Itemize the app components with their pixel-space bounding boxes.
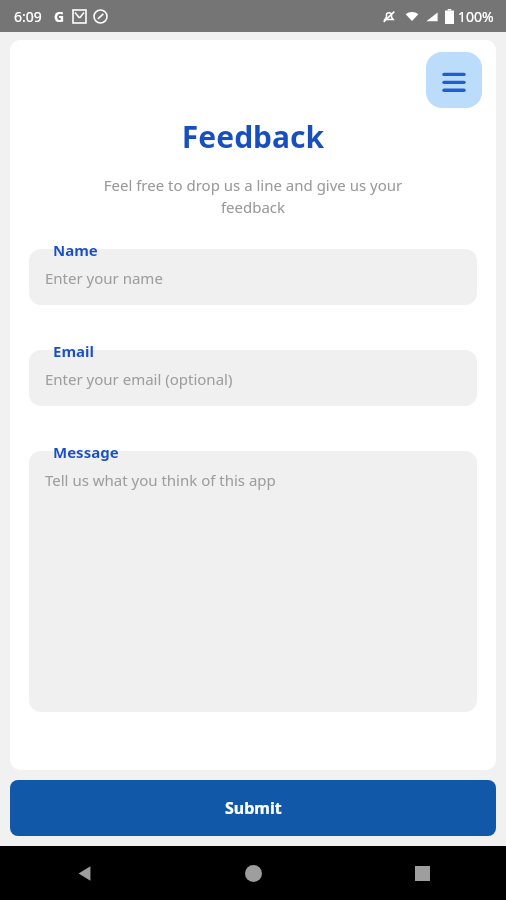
staticText: Tell us what you think of this app — [45, 470, 276, 490]
staticText: Message — [53, 442, 119, 462]
button[interactable]: Menu — [426, 52, 482, 108]
staticText: Submit — [225, 797, 282, 819]
staticText: Feel free to drop us a line and give us … — [72, 175, 434, 218]
button[interactable]: Home — [226, 846, 280, 900]
staticText: Name — [53, 240, 98, 260]
staticText: Enter your email (optional) — [45, 369, 233, 389]
button[interactable]: Enter your email (optional) — [29, 350, 477, 406]
button[interactable]: Submit — [10, 780, 496, 836]
staticText: Email — [53, 341, 94, 361]
staticText: Enter your name — [45, 268, 163, 288]
staticText: 6:09 — [14, 7, 42, 26]
button[interactable]: Enter your name — [29, 249, 477, 305]
staticText: 100% — [458, 7, 494, 26]
staticText: Feedback — [10, 116, 496, 157]
button[interactable]: Back — [57, 846, 111, 900]
button[interactable]: Recents — [395, 846, 449, 900]
staticText: G — [54, 7, 65, 26]
button[interactable]: Tell us what you think of this app — [29, 451, 477, 712]
